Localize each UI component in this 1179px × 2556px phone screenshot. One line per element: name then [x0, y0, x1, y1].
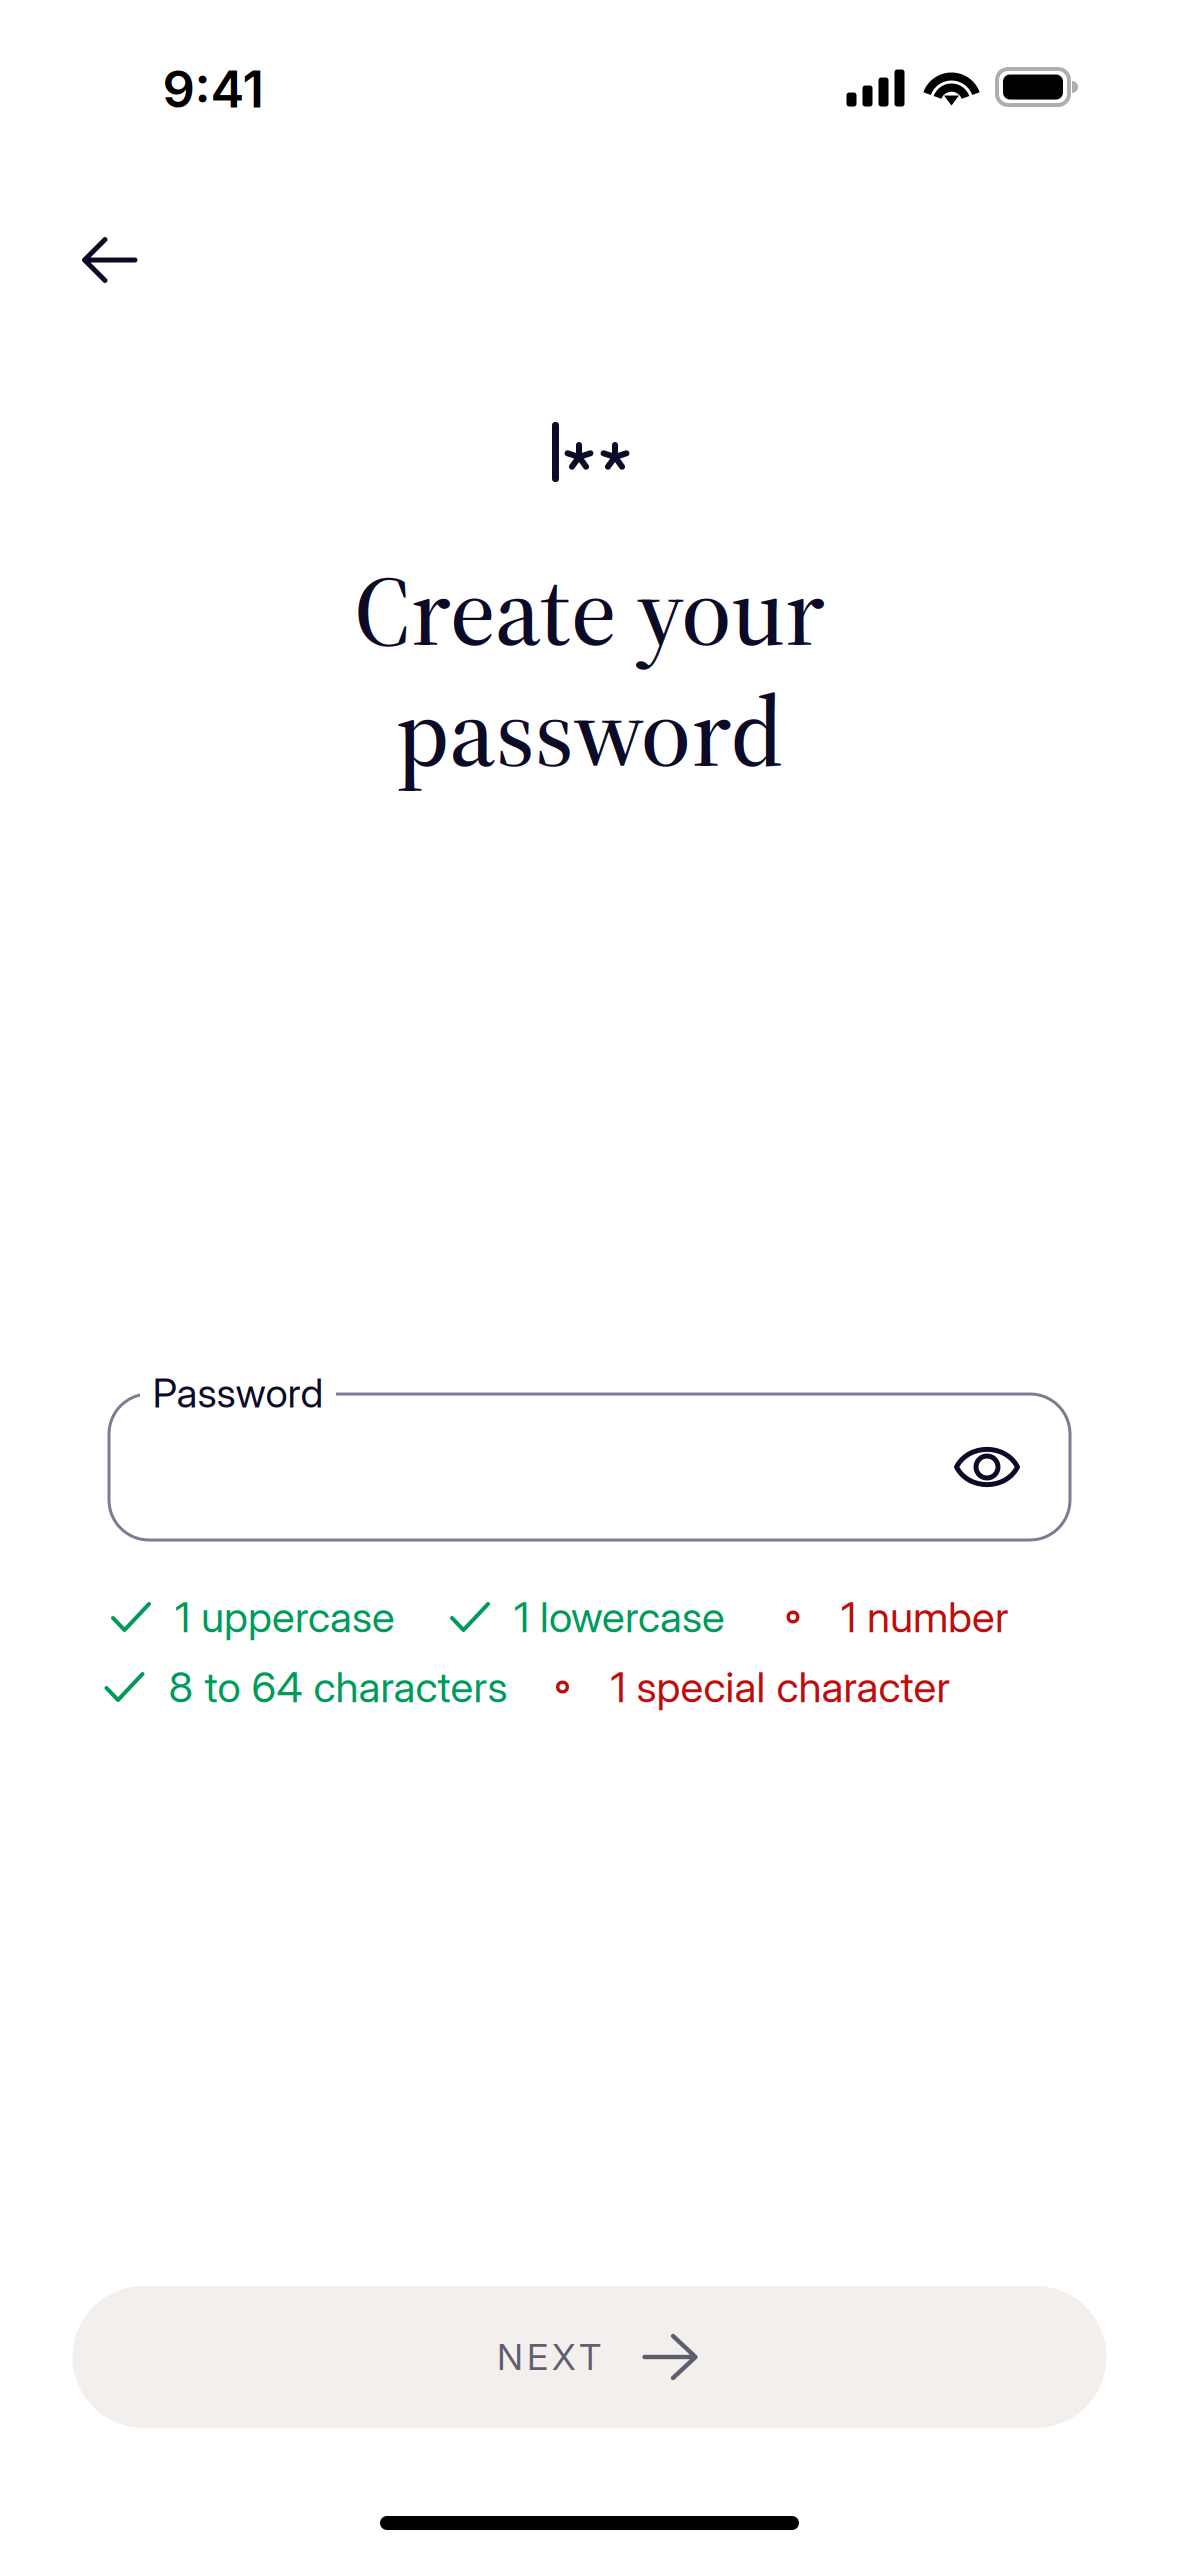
button[interactable]: Back	[50, 205, 170, 315]
staticText: 1 uppercase	[175, 1591, 395, 1642]
button[interactable]: Show password	[932, 1412, 1042, 1522]
button[interactable]: NEXT	[72, 2286, 1106, 2428]
staticText: Password	[152, 1369, 323, 1417]
staticText: 9:41	[162, 58, 263, 120]
staticText: 1 special character	[610, 1661, 950, 1712]
staticText: NEXT	[497, 2335, 601, 2379]
staticText: 8 to 64 characters	[168, 1661, 507, 1712]
staticText: 1 lowercase	[514, 1591, 725, 1642]
staticText: password	[395, 663, 783, 799]
staticText: Create your	[354, 542, 825, 678]
staticText: 1 number	[841, 1591, 1009, 1642]
